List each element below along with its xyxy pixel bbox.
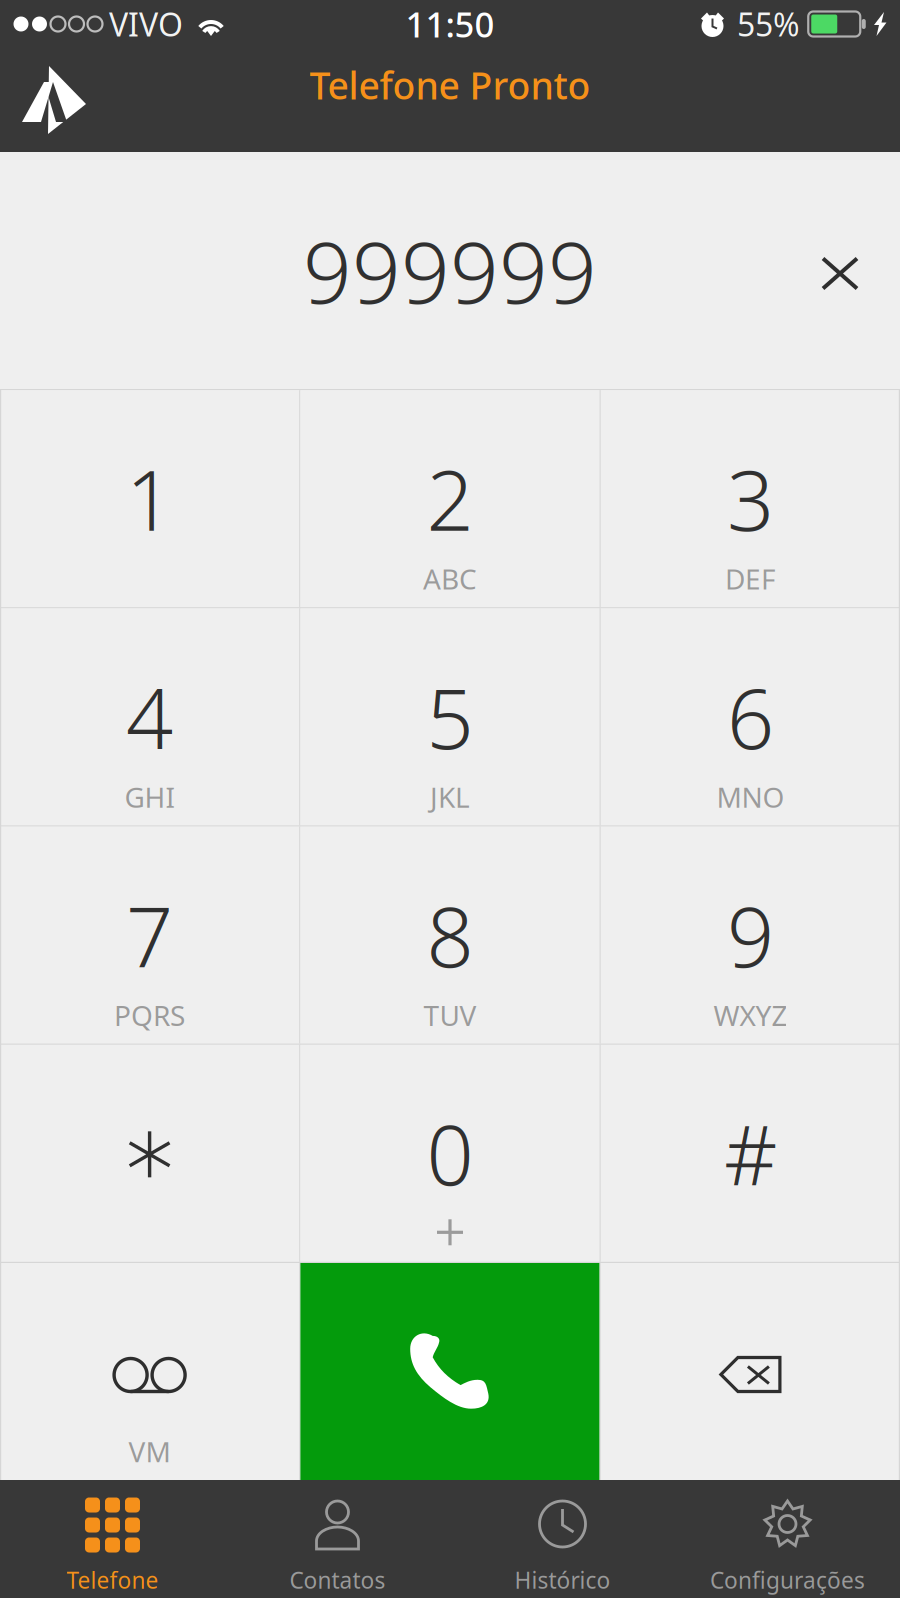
staticText: GHI — [125, 778, 175, 815]
button[interactable]: 8 — [300, 827, 600, 1044]
staticText: Contatos — [289, 1565, 385, 1595]
staticText: # — [724, 1098, 777, 1208]
staticText: Telefone Pronto — [309, 60, 590, 110]
button[interactable]: Voicemail — [0, 1263, 299, 1480]
staticText: WXYZ — [713, 996, 787, 1034]
button[interactable]: Telefone — [0, 1480, 225, 1598]
staticText: JKL — [430, 778, 470, 815]
button[interactable] — [0, 1045, 299, 1262]
staticText: 11:50 — [405, 1, 494, 47]
staticText: 999999 — [303, 214, 597, 327]
staticText: 3 — [727, 444, 774, 554]
staticText: 5 — [426, 662, 473, 772]
staticText: Configurações — [710, 1565, 865, 1595]
button[interactable]: 6 — [601, 608, 900, 825]
staticText: PQRS — [114, 996, 185, 1034]
staticText: TUV — [423, 996, 476, 1034]
button[interactable]: Clear — [793, 223, 887, 317]
staticText: MNO — [716, 778, 784, 815]
button[interactable]: Menu — [0, 48, 110, 152]
staticText: VIVO — [109, 3, 183, 45]
button[interactable]: 1 — [0, 390, 299, 607]
staticText: DEF — [725, 560, 776, 597]
button[interactable]: 0 — [300, 1045, 600, 1262]
button[interactable]: 9 — [601, 827, 900, 1044]
staticText: ABC — [423, 560, 477, 597]
button[interactable]: Configurações — [675, 1480, 900, 1598]
button[interactable]: 5 — [300, 608, 600, 825]
staticText: Telefone — [66, 1565, 158, 1595]
staticText: 7 — [126, 880, 173, 990]
button[interactable]: Delete — [601, 1263, 900, 1480]
button[interactable]: 3 — [601, 390, 900, 607]
staticText: 8 — [426, 880, 473, 990]
staticText: 4 — [126, 662, 173, 772]
staticText: Histórico — [514, 1565, 610, 1595]
staticText: 6 — [727, 662, 774, 772]
button[interactable]: # — [601, 1045, 900, 1262]
button[interactable]: Call — [300, 1263, 600, 1480]
staticText: VM — [129, 1433, 171, 1470]
staticText: 2 — [426, 444, 473, 554]
button[interactable]: 4 — [0, 608, 299, 825]
button[interactable]: 7 — [0, 827, 299, 1044]
button[interactable]: Contatos — [225, 1480, 450, 1598]
staticText: 55% — [737, 3, 800, 45]
button[interactable]: 2 — [300, 390, 600, 607]
button[interactable]: Histórico — [450, 1480, 675, 1598]
staticText: 9 — [727, 880, 774, 990]
staticText: 0 — [426, 1098, 473, 1208]
staticText: 1 — [126, 444, 173, 554]
